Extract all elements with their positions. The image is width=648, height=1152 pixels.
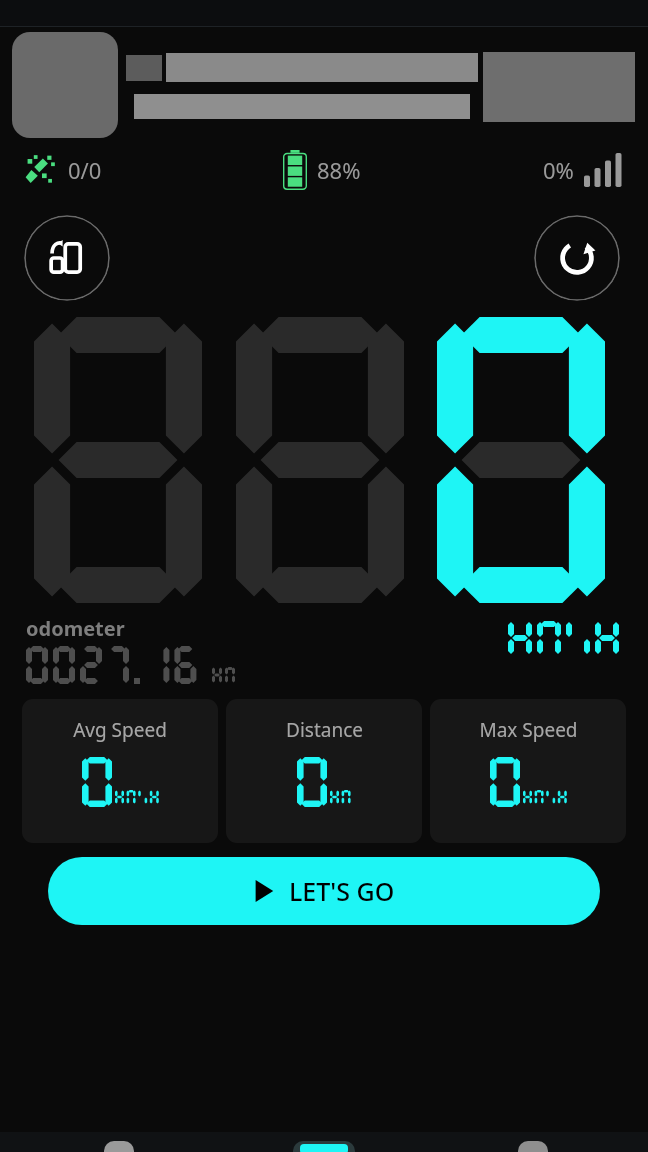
button[interactable]: Avg Speed [22, 699, 218, 843]
staticText: LET'S GO [289, 874, 395, 908]
button[interactable]: Speedometer [293, 1141, 355, 1152]
button[interactable]: Distance [226, 699, 422, 843]
button[interactable]: LET'S GO [48, 857, 600, 925]
button[interactable]: History [104, 1141, 134, 1152]
button[interactable]: Max Speed [430, 699, 626, 843]
staticText: Max Speed [479, 717, 578, 743]
button[interactable]: Reset [534, 215, 620, 301]
staticText: 88% [317, 155, 361, 185]
staticText: Avg Speed [73, 717, 167, 743]
button[interactable]: Settings [518, 1141, 548, 1152]
staticText: odometer [26, 615, 125, 642]
staticText: 0% [543, 155, 574, 185]
staticText: 0/0 [68, 155, 102, 185]
button[interactable]: Rotate screen [24, 215, 110, 301]
staticText: Distance [286, 717, 363, 743]
